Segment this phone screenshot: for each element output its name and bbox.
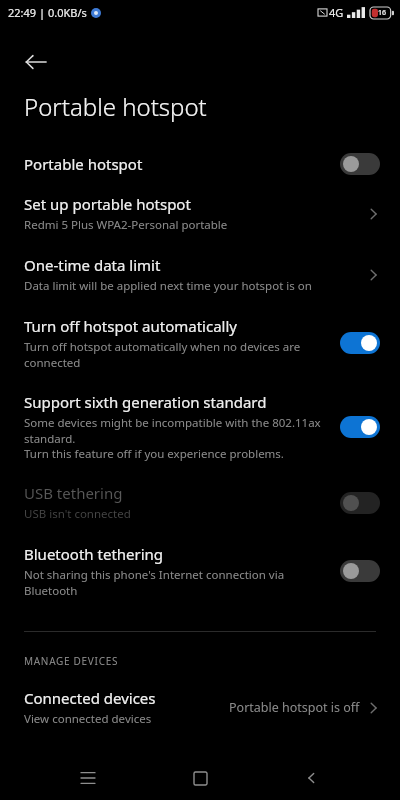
staticText: Some devices might be incompatible with … [24,415,330,461]
button[interactable]: Connected devices [0,684,400,737]
button[interactable]: Portable hotspot [0,145,400,183]
staticText: Portable hotspot is off [229,699,360,716]
staticText: MANAGE DEVICES [24,654,119,668]
button[interactable]: Support sixth generation standard [0,381,400,472]
staticText: 4G [329,5,344,20]
staticText: Support sixth generation standard [24,392,267,412]
staticText: Turn off hotspot automatically when no d… [24,339,330,370]
button[interactable]: Back [12,38,60,86]
button[interactable]: One-time data limit [0,244,400,305]
button[interactable]: Toggle [340,332,380,354]
button[interactable]: Bluetooth tethering [0,533,400,609]
staticText: Turn off hotspot automatically [24,316,237,336]
staticText: Not sharing this phone's Internet connec… [24,567,330,598]
button[interactable]: Toggle [340,416,380,438]
staticText: Set up portable hotspot [24,194,191,214]
button[interactable]: Turn off hotspot automatically [0,305,400,381]
button[interactable]: Toggle [340,153,380,175]
staticText: Portable hotspot [24,90,207,123]
staticText: One-time data limit [24,255,161,275]
staticText: USB isn't connected [24,506,131,522]
button[interactable]: Recent apps [64,756,112,800]
staticText: Redmi 5 Plus WPA2-Personal portable [24,217,228,233]
staticText: Connected devices [24,688,156,708]
button[interactable]: USB tethering [0,472,400,533]
button[interactable]: Back [288,756,336,800]
staticText: Portable hotspot [24,154,143,174]
staticText: View connected devices [24,711,152,727]
button[interactable]: Set up portable hotspot [0,183,400,244]
button[interactable]: Toggle [340,560,380,582]
staticText: Data limit will be applied next time you… [24,278,312,294]
staticText: USB tethering [24,483,123,503]
button[interactable]: Toggle [340,492,380,514]
staticText: 16 [378,8,387,18]
staticText: Bluetooth tethering [24,544,164,564]
button[interactable]: Home [176,756,224,800]
staticText: 22:49 | 0.0KB/s [8,5,87,20]
